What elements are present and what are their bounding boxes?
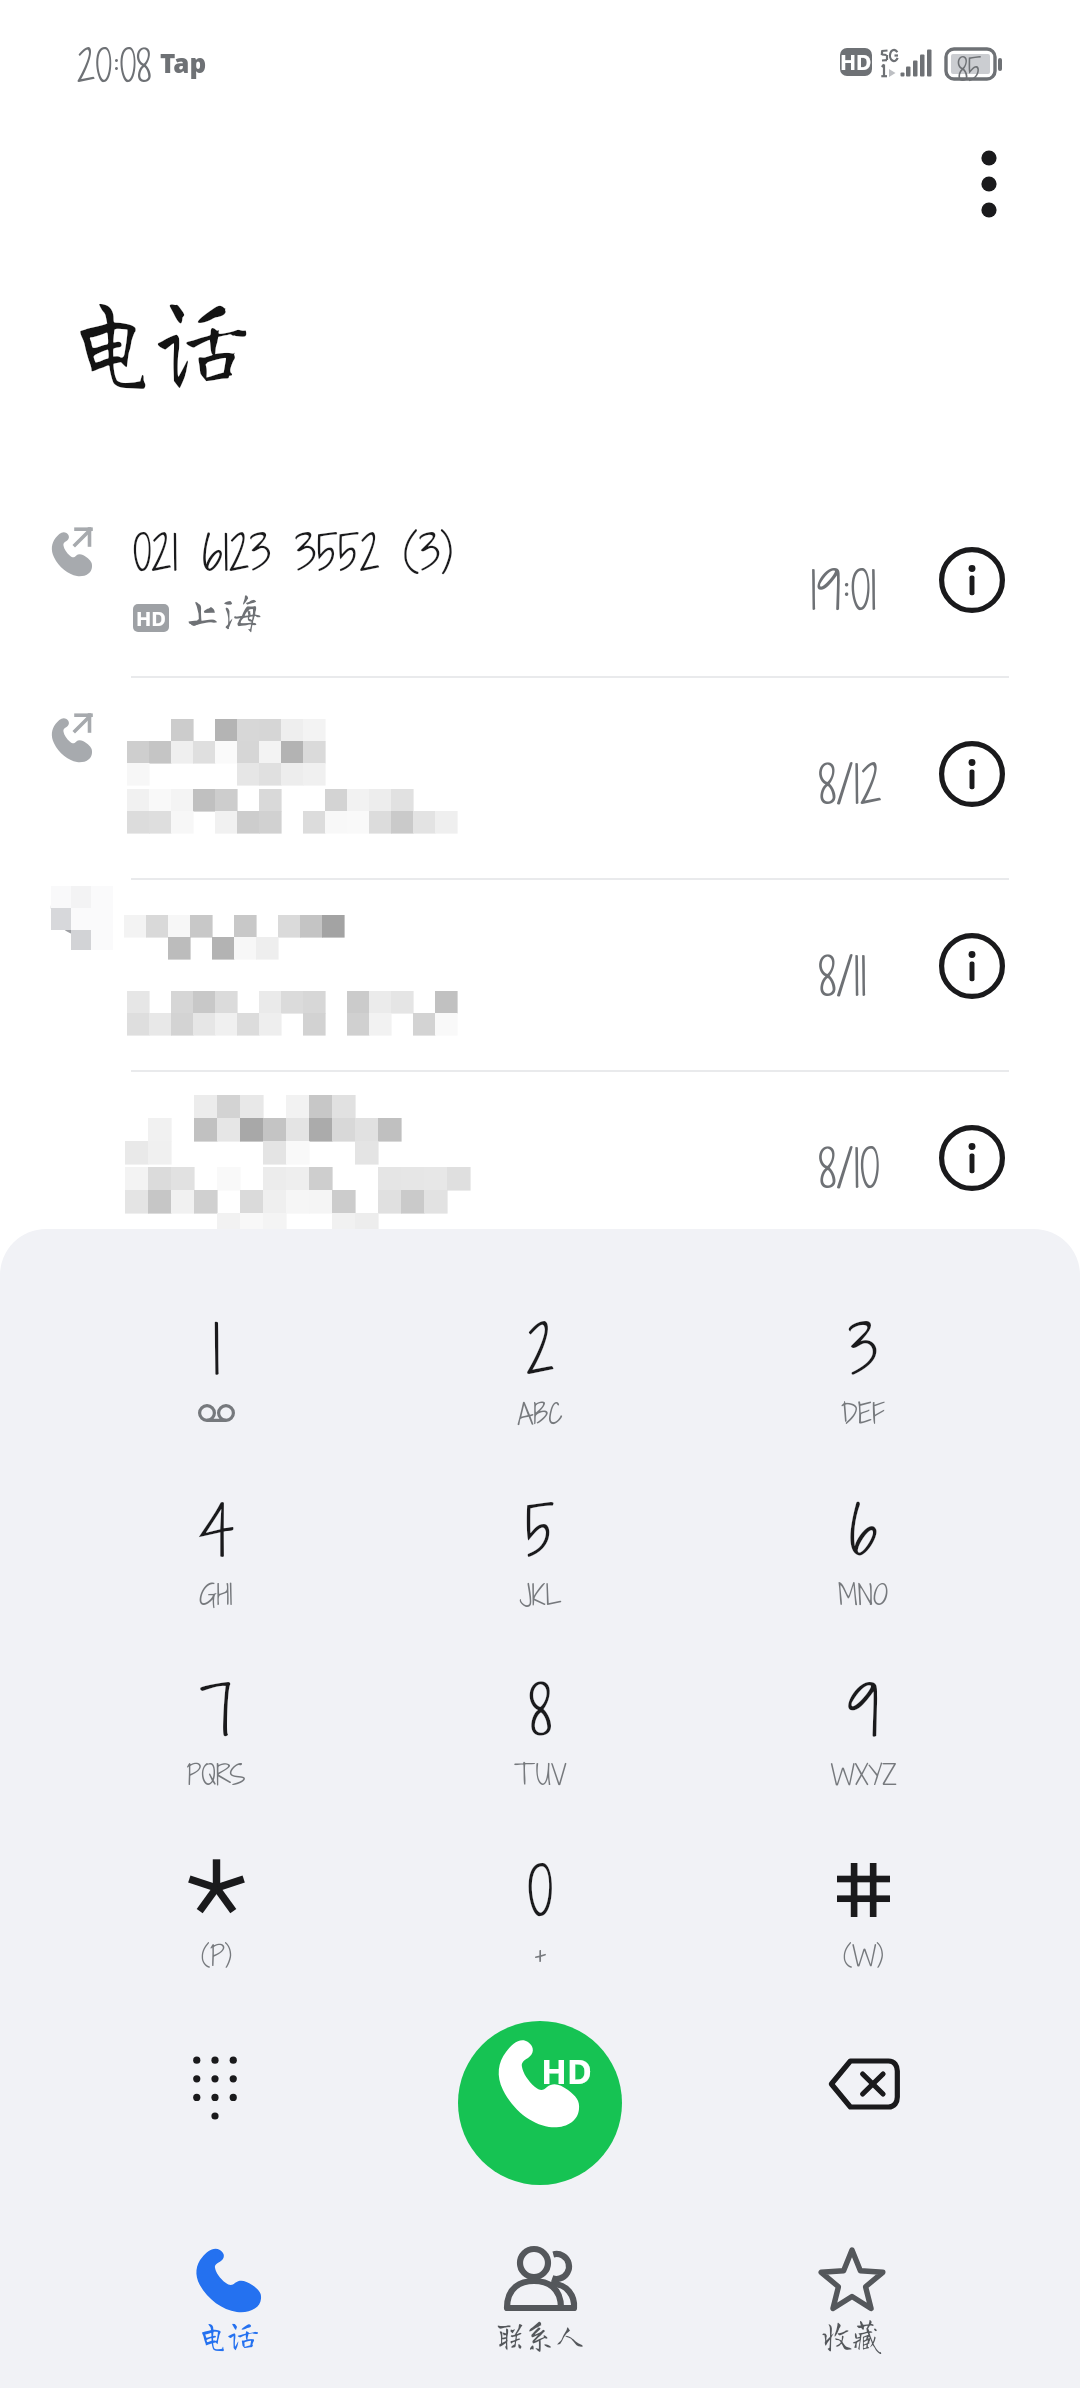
button[interactable]: (P) bbox=[66, 1822, 366, 1972]
staticText: 0 bbox=[527, 1844, 553, 1938]
button[interactable]: (W) bbox=[713, 1822, 1013, 1972]
staticText: 5 bbox=[525, 1483, 555, 1577]
button[interactable]: 8 bbox=[390, 1641, 690, 1791]
button[interactable]: Call details bbox=[928, 922, 1016, 1010]
staticText: 8/10 bbox=[818, 1132, 880, 1205]
staticText: Tap bbox=[160, 45, 207, 80]
button[interactable]: 电话 bbox=[72, 2245, 384, 2388]
staticText: 联系人 bbox=[495, 2316, 585, 2353]
staticText: + bbox=[533, 1936, 548, 1975]
button[interactable]: 3 bbox=[713, 1280, 1013, 1430]
staticText: 6 bbox=[848, 1483, 878, 1577]
button[interactable]: Call details bbox=[928, 1114, 1016, 1202]
button[interactable]: More options bbox=[941, 143, 1037, 239]
button[interactable]: 1 bbox=[66, 1280, 366, 1430]
staticText: HD bbox=[840, 48, 872, 76]
button[interactable]: 021 6123 3552 (3) bbox=[0, 492, 1080, 676]
button[interactable]: 2 bbox=[390, 1280, 690, 1430]
staticText: PQRS bbox=[186, 1755, 246, 1794]
staticText: 收藏 bbox=[822, 2316, 882, 2353]
staticText: (P) bbox=[201, 1936, 232, 1975]
staticText: 3 bbox=[848, 1302, 878, 1396]
staticText: HD bbox=[541, 2048, 592, 2094]
button[interactable]: 5 bbox=[390, 1461, 690, 1611]
staticText: 8 bbox=[528, 1663, 552, 1757]
button[interactable]: 收藏 bbox=[696, 2245, 1008, 2388]
staticText: (W) bbox=[843, 1936, 884, 1975]
staticText: 1 bbox=[212, 1302, 221, 1396]
button[interactable]: Call details bbox=[928, 536, 1016, 624]
staticText: DEF bbox=[841, 1394, 885, 1433]
button[interactable]: Hide keypad bbox=[150, 2020, 280, 2150]
staticText: JKL bbox=[519, 1575, 562, 1614]
button[interactable]: 8/12 bbox=[0, 686, 1080, 878]
button[interactable]: 7 bbox=[66, 1641, 366, 1791]
staticText: HD bbox=[136, 605, 166, 632]
staticText: 4 bbox=[198, 1483, 235, 1577]
staticText: ABC bbox=[517, 1394, 563, 1433]
button[interactable]: 4 bbox=[66, 1461, 366, 1611]
staticText: 021 6123 3552 (3) bbox=[133, 518, 453, 586]
button[interactable]: 联系人 bbox=[384, 2245, 696, 2388]
staticText: 19:01 bbox=[810, 554, 877, 627]
staticText: MNO bbox=[838, 1575, 888, 1614]
staticText: 上海 bbox=[183, 588, 262, 632]
button[interactable]: Call bbox=[458, 2021, 622, 2185]
button[interactable]: Delete bbox=[799, 2019, 929, 2149]
staticText: 电话 bbox=[68, 278, 247, 394]
staticText: 8/12 bbox=[818, 748, 882, 821]
staticText: 2 bbox=[526, 1302, 555, 1396]
staticText: 电话 bbox=[198, 2316, 258, 2353]
staticText: TUV bbox=[514, 1755, 567, 1794]
button[interactable]: Call details bbox=[928, 730, 1016, 818]
staticText: 20:08 bbox=[77, 35, 152, 96]
staticText: GHI bbox=[199, 1575, 233, 1614]
button[interactable]: 8/10 bbox=[0, 1070, 1080, 1262]
staticText: 8/11 bbox=[818, 940, 867, 1013]
button[interactable]: 0 bbox=[390, 1822, 690, 1972]
staticText: WXYZ bbox=[830, 1755, 897, 1794]
button[interactable]: 9 bbox=[713, 1641, 1013, 1791]
staticText: 7 bbox=[199, 1663, 233, 1757]
button[interactable]: 6 bbox=[713, 1461, 1013, 1611]
button[interactable]: 8/11 bbox=[0, 878, 1080, 1070]
staticText: 85 bbox=[957, 47, 982, 91]
staticText: 9 bbox=[847, 1663, 879, 1757]
